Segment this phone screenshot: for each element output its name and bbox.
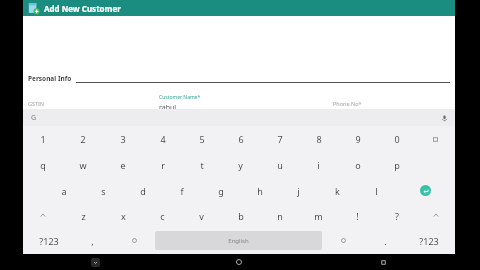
button[interactable]: Phone No*	[333, 94, 450, 109]
button[interactable]: ?123	[406, 230, 452, 251]
staticText: x	[121, 210, 126, 222]
staticText: p	[394, 159, 400, 171]
button[interactable]: q	[23, 152, 63, 178]
staticText: 0	[394, 133, 400, 145]
staticText: 3	[120, 133, 126, 145]
staticText: G	[31, 113, 37, 123]
staticText: y	[238, 159, 243, 171]
staticText: 6	[238, 133, 244, 145]
button[interactable]: l	[357, 178, 396, 203]
staticText: w	[79, 159, 87, 171]
staticText: Add New Customer	[44, 3, 121, 14]
staticText: j	[297, 185, 300, 197]
staticText: .	[384, 235, 387, 247]
staticText: m	[314, 210, 323, 222]
staticText: ?123	[419, 235, 439, 247]
button[interactable]: .	[364, 230, 406, 251]
button[interactable]: k	[318, 178, 357, 203]
button[interactable]: i	[299, 152, 338, 178]
staticText: q	[40, 159, 46, 171]
staticText: 9	[355, 133, 361, 145]
button[interactable]: Voice input	[439, 113, 449, 123]
button[interactable]: Home	[167, 254, 311, 270]
staticText: l	[375, 185, 378, 197]
button[interactable]: c	[143, 203, 182, 228]
button[interactable]: f	[162, 178, 201, 203]
staticText: r	[161, 159, 165, 171]
button[interactable]: 6	[221, 126, 260, 152]
button[interactable]: ?	[377, 203, 416, 228]
button[interactable]: w	[63, 152, 103, 178]
staticText: 8	[316, 133, 322, 145]
staticText: 1	[40, 133, 46, 145]
button[interactable]: b	[221, 203, 260, 228]
button[interactable]: Settings	[322, 230, 364, 251]
button[interactable]: 0	[377, 126, 416, 152]
button[interactable]: t	[182, 152, 221, 178]
staticText: v	[199, 210, 204, 222]
button[interactable]: 1	[23, 126, 63, 152]
button[interactable]: English	[155, 231, 322, 250]
button[interactable]: m	[299, 203, 338, 228]
staticText: g	[218, 185, 224, 197]
staticText: rahul	[159, 103, 177, 109]
button[interactable]: 7	[260, 126, 299, 152]
button[interactable]: 9	[338, 126, 377, 152]
button[interactable]: d	[123, 178, 162, 203]
button[interactable]: y	[221, 152, 260, 178]
button[interactable]: v	[182, 203, 221, 228]
button[interactable]: s	[84, 178, 123, 203]
button[interactable]: u	[260, 152, 299, 178]
button[interactable]: e	[103, 152, 143, 178]
button[interactable]: Backspace	[416, 126, 455, 152]
staticText: ?	[395, 210, 399, 222]
staticText: u	[277, 159, 283, 171]
button[interactable]: 4	[143, 126, 182, 152]
button[interactable]: Add new customer icon	[23, 0, 455, 16]
button[interactable]: a	[44, 178, 84, 203]
other: Add new customer icon	[27, 2, 40, 15]
staticText: Customer Name*	[159, 94, 201, 101]
button[interactable]: g	[201, 178, 240, 203]
staticText: 5	[199, 133, 205, 145]
button[interactable]: !	[338, 203, 377, 228]
button[interactable]: Shift right	[416, 203, 455, 228]
button[interactable]: Shift	[23, 203, 63, 228]
button[interactable]: 2	[63, 126, 103, 152]
staticText: Phone No*	[333, 100, 362, 107]
button[interactable]: 3	[103, 126, 143, 152]
staticText: s	[101, 185, 106, 197]
button[interactable]: 8	[299, 126, 338, 152]
button[interactable]: p	[377, 152, 416, 178]
button[interactable]: h	[240, 178, 279, 203]
button[interactable]: Google	[29, 113, 39, 123]
staticText: ,	[91, 235, 94, 247]
staticText: GSTIN	[28, 100, 45, 107]
button[interactable]: j	[279, 178, 318, 203]
staticText: ?123	[39, 235, 59, 247]
staticText: 2	[80, 133, 86, 145]
button[interactable]: z	[63, 203, 103, 228]
staticText: n	[277, 210, 283, 222]
button[interactable]: Customer Name*	[159, 94, 325, 109]
button[interactable]: o	[338, 152, 377, 178]
button[interactable]: 5	[182, 126, 221, 152]
staticText: z	[81, 210, 86, 222]
button[interactable]: ?123	[26, 230, 71, 251]
button[interactable]: n	[260, 203, 299, 228]
button[interactable]: r	[143, 152, 182, 178]
button[interactable]: Enter	[420, 185, 431, 196]
staticText: !	[356, 210, 359, 222]
button[interactable]: Hide keyboard	[23, 254, 167, 270]
button[interactable]: Emoji	[113, 230, 155, 251]
button[interactable]: GSTIN	[28, 94, 151, 109]
staticText: Personal Info	[28, 74, 72, 83]
staticText: t	[200, 159, 204, 171]
staticText: f	[180, 185, 184, 197]
staticText: k	[335, 185, 340, 197]
staticText: i	[317, 159, 320, 171]
button[interactable]: ,	[71, 230, 113, 251]
button[interactable]: Recents	[311, 254, 455, 270]
button[interactable]: x	[103, 203, 143, 228]
staticText: 4	[160, 133, 166, 145]
